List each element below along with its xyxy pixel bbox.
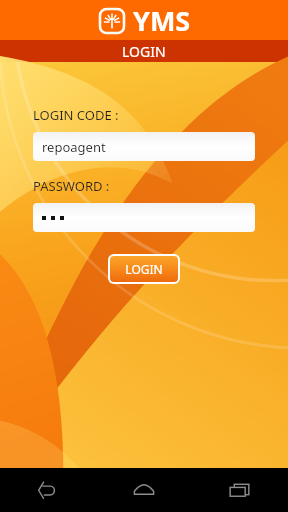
staticText: LOGIN CODE : — [33, 106, 119, 124]
button[interactable]: Back — [0, 468, 96, 512]
button[interactable]: Recent apps — [192, 468, 288, 512]
staticText: repoagent — [42, 138, 106, 156]
button[interactable] — [33, 203, 255, 232]
staticText: PASSWORD : — [33, 177, 110, 195]
staticText: LOGIN — [125, 261, 163, 277]
button[interactable]: LOGIN — [110, 256, 178, 282]
staticText: YMS — [133, 2, 191, 39]
button[interactable]: repoagent — [33, 132, 255, 161]
staticText: LOGIN — [122, 42, 166, 61]
button[interactable]: Home — [96, 468, 192, 512]
